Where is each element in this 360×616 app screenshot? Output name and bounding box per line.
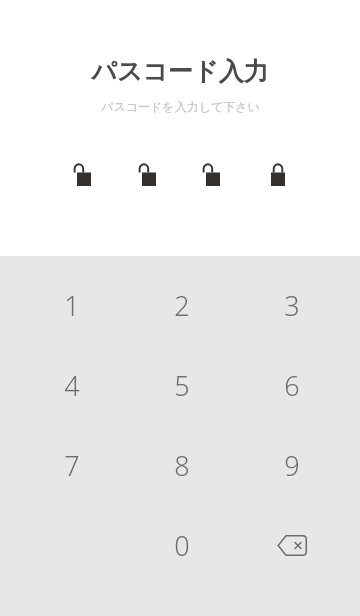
button[interactable]: 3 (237, 265, 347, 345)
staticText: パスコード入力 (91, 56, 269, 87)
button[interactable]: Backspace (237, 505, 347, 585)
staticText: 9 (284, 447, 300, 484)
staticText: 7 (64, 447, 80, 484)
button[interactable]: 6 (237, 345, 347, 425)
button[interactable]: 0 (127, 505, 237, 585)
button[interactable]: 2 (127, 265, 237, 345)
staticText: 4 (64, 367, 80, 404)
staticText: 8 (174, 447, 190, 484)
staticText: 5 (174, 367, 190, 404)
button[interactable]: 8 (127, 425, 237, 505)
button[interactable]: 4 (16, 345, 127, 425)
staticText: 2 (174, 287, 190, 324)
staticText: 0 (174, 527, 190, 564)
staticText: 6 (284, 367, 300, 404)
staticText: 3 (284, 287, 300, 324)
button[interactable]: 5 (127, 345, 237, 425)
button[interactable]: 7 (16, 425, 127, 505)
staticText: 1 (64, 287, 80, 324)
button[interactable]: 9 (237, 425, 347, 505)
button[interactable]: 1 (16, 265, 127, 345)
staticText: パスコードを入力して下さい (101, 99, 260, 114)
